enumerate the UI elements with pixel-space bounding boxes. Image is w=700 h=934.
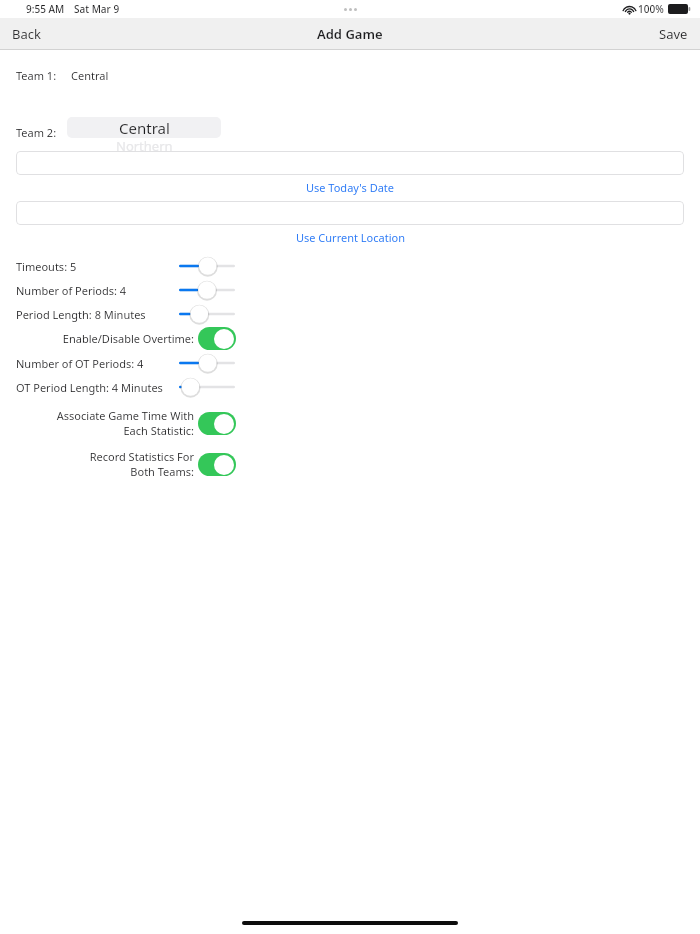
button[interactable]	[16, 151, 684, 175]
button[interactable]: Use Today's Date	[16, 180, 684, 195]
button[interactable]	[178, 376, 236, 398]
staticText: Team 2:	[16, 125, 57, 140]
button[interactable]	[178, 255, 236, 277]
staticText: Save	[659, 25, 688, 43]
staticText: Northern	[116, 137, 173, 155]
button[interactable]	[16, 201, 684, 225]
staticText: OT Period Length: 4 Minutes	[16, 380, 163, 395]
staticText: Period Length: 8 Minutes	[16, 307, 146, 322]
staticText: Number of OT Periods: 4	[16, 356, 144, 371]
button[interactable]: Save	[647, 19, 700, 49]
staticText: Associate Game Time With	[56, 408, 194, 423]
staticText: Add Game	[317, 25, 383, 43]
button[interactable]: Central	[71, 68, 109, 83]
button[interactable]	[178, 303, 236, 325]
button[interactable]	[178, 352, 236, 374]
staticText: Both Teams:	[130, 464, 194, 479]
staticText: Record Statistics For	[89, 449, 194, 464]
staticText: Number of Periods: 4	[16, 283, 127, 298]
staticText: Central	[71, 68, 109, 83]
button[interactable]: Central	[67, 117, 221, 147]
button[interactable]: Toggle	[198, 412, 236, 435]
staticText: Timeouts: 5	[16, 259, 77, 274]
button[interactable]: Toggle	[198, 327, 236, 350]
button[interactable]: Use Current Location	[16, 230, 684, 245]
staticText: Each Statistic:	[123, 423, 194, 438]
staticText: Team 1:	[16, 68, 57, 83]
staticText: 9:55 AM	[26, 2, 65, 16]
staticText: Central	[119, 118, 170, 138]
staticText: Enable/Disable Overtime:	[62, 331, 194, 346]
button[interactable]: Back	[0, 19, 53, 49]
staticText: Sat Mar 9	[74, 2, 120, 16]
staticText: 100%	[638, 2, 664, 16]
staticText: Use Today's Date	[306, 180, 395, 195]
button[interactable]	[178, 279, 236, 301]
button[interactable]: Toggle	[198, 453, 236, 476]
staticText: Back	[12, 25, 41, 43]
staticText: Use Current Location	[296, 230, 405, 245]
